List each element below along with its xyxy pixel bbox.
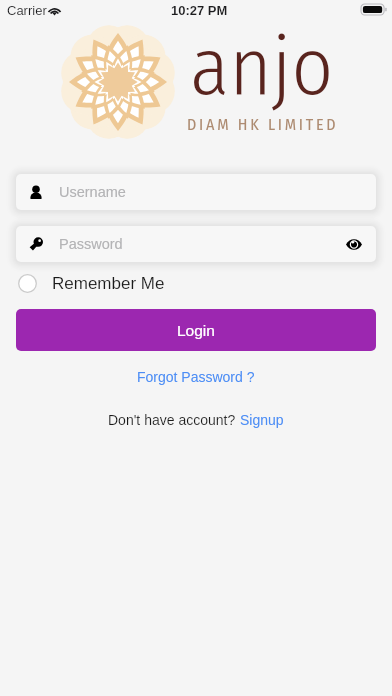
button[interactable]: Login [16,309,376,351]
button[interactable]: Username [16,174,376,210]
staticText: 10:27 PM [171,3,228,18]
button[interactable]: Remember Me [18,274,165,293]
button[interactable]: Forgot Password ? [127,366,265,388]
button[interactable]: Password [16,226,376,262]
staticText: Remember Me [52,274,165,293]
staticText: Don't have account? [108,412,240,428]
staticText: Username [59,184,126,200]
staticText: Carrier [7,3,47,18]
button[interactable]: Signup [240,412,284,428]
staticText: Signup [240,412,284,428]
staticText: Login [177,322,215,339]
staticText: DIAM HK LIMITED [187,115,339,134]
staticText: anjo [190,18,334,115]
staticText: Password [59,236,123,252]
button[interactable]: Show password [340,226,376,262]
staticText: Forgot Password ? [137,369,255,385]
